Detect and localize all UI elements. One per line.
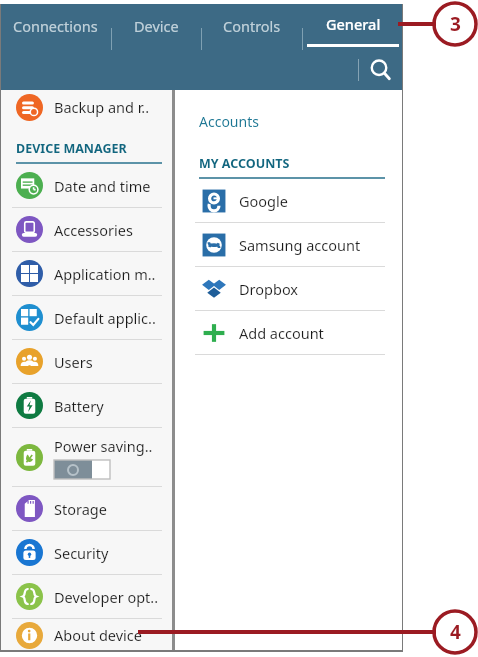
staticText: Security bbox=[54, 543, 109, 563]
staticText: About device bbox=[54, 625, 142, 645]
staticText: Samsung account bbox=[239, 235, 361, 255]
button[interactable]: Controls bbox=[202, 4, 302, 50]
button[interactable]: Users bbox=[0, 340, 172, 383]
button[interactable]: Developer opt.. bbox=[0, 575, 172, 618]
staticText: Add account bbox=[239, 323, 324, 343]
staticText: Developer opt.. bbox=[54, 587, 159, 607]
staticText: Users bbox=[54, 352, 93, 372]
staticText: MY ACCOUNTS bbox=[199, 155, 290, 172]
staticText: Default applic.. bbox=[54, 308, 156, 328]
button[interactable]: Security bbox=[0, 531, 172, 574]
button[interactable]: Date and time bbox=[0, 164, 172, 207]
button[interactable]: Application m.. bbox=[0, 252, 172, 295]
button[interactable]: Connections bbox=[0, 4, 111, 50]
button[interactable]: General bbox=[303, 4, 403, 50]
button[interactable]: Add account bbox=[175, 311, 403, 354]
button[interactable]: Battery bbox=[0, 384, 172, 427]
button[interactable]: Storage bbox=[0, 487, 172, 530]
staticText: Google bbox=[239, 191, 288, 211]
staticText: Device bbox=[134, 16, 179, 36]
staticText: 3 bbox=[450, 11, 461, 37]
staticText: Battery bbox=[54, 396, 104, 416]
button[interactable]: About device bbox=[0, 619, 172, 651]
button[interactable] bbox=[54, 460, 110, 479]
button[interactable]: Accessories bbox=[0, 208, 172, 251]
button[interactable]: Device bbox=[112, 4, 201, 50]
staticText: 4 bbox=[450, 619, 461, 645]
button[interactable]: Google bbox=[175, 179, 403, 222]
staticText: Connections bbox=[13, 16, 98, 36]
staticText: Dropbox bbox=[239, 279, 299, 299]
staticText: Controls bbox=[223, 16, 281, 36]
button[interactable]: Backup and r.. bbox=[0, 90, 172, 124]
staticText: Accounts bbox=[199, 112, 259, 131]
staticText: Backup and r.. bbox=[54, 97, 150, 117]
button[interactable]: Default applic.. bbox=[0, 296, 172, 339]
staticText: Storage bbox=[54, 499, 107, 519]
staticText: Date and time bbox=[54, 176, 151, 196]
staticText: Accessories bbox=[54, 220, 133, 240]
staticText: Power saving.. bbox=[54, 436, 153, 456]
button[interactable]: Search bbox=[359, 50, 403, 90]
staticText: General bbox=[326, 14, 381, 34]
button[interactable]: Power saving.. bbox=[0, 428, 172, 486]
button[interactable]: Dropbox bbox=[175, 267, 403, 310]
button[interactable]: Samsung account bbox=[175, 223, 403, 266]
staticText: Application m.. bbox=[54, 264, 156, 284]
staticText: DEVICE MANAGER bbox=[16, 140, 127, 157]
